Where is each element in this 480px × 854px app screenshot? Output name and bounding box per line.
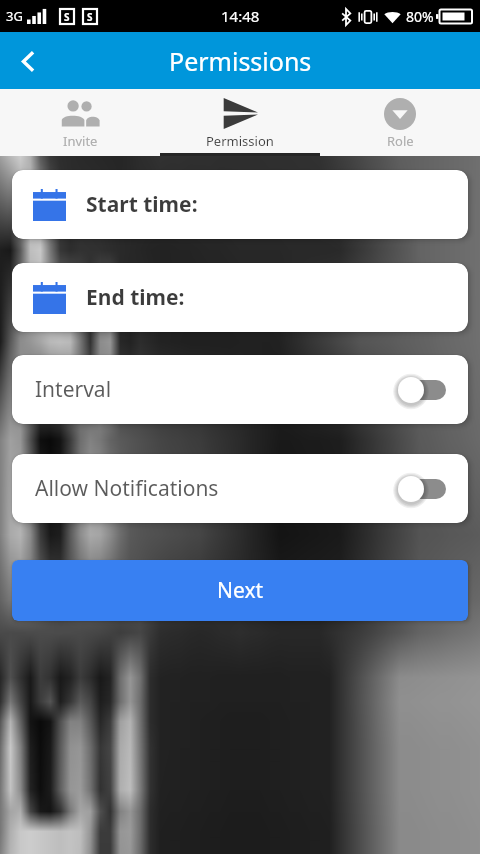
staticText: Role	[387, 132, 414, 150]
staticText: S	[64, 10, 70, 24]
button[interactable]: Invite	[0, 89, 160, 156]
staticText: 14:48	[221, 6, 260, 26]
staticText: Next	[217, 576, 264, 605]
staticText: Invite	[63, 132, 98, 150]
staticText: Permission	[206, 132, 274, 150]
button[interactable]: Allow Notifications	[12, 454, 468, 523]
button[interactable]: End time:	[12, 263, 468, 332]
staticText: Interval	[35, 375, 112, 404]
button[interactable]: Interval	[12, 355, 468, 424]
button[interactable]: Back	[0, 33, 56, 89]
staticText: Start time:	[86, 190, 198, 219]
button[interactable]: Role	[320, 89, 480, 156]
button[interactable]: Toggle Allow Notifications	[400, 474, 446, 504]
button[interactable]: Permission	[160, 89, 320, 156]
staticText: Permissions	[169, 44, 312, 78]
button[interactable]: Toggle Interval	[400, 375, 446, 405]
button[interactable]: Start time:	[12, 170, 468, 239]
staticText: End time:	[86, 283, 185, 312]
staticText: S	[87, 10, 93, 24]
staticText: 80%	[406, 7, 434, 26]
staticText: Allow Notifications	[35, 474, 219, 503]
staticText: 3G	[6, 7, 23, 25]
button[interactable]: Next	[12, 560, 468, 621]
